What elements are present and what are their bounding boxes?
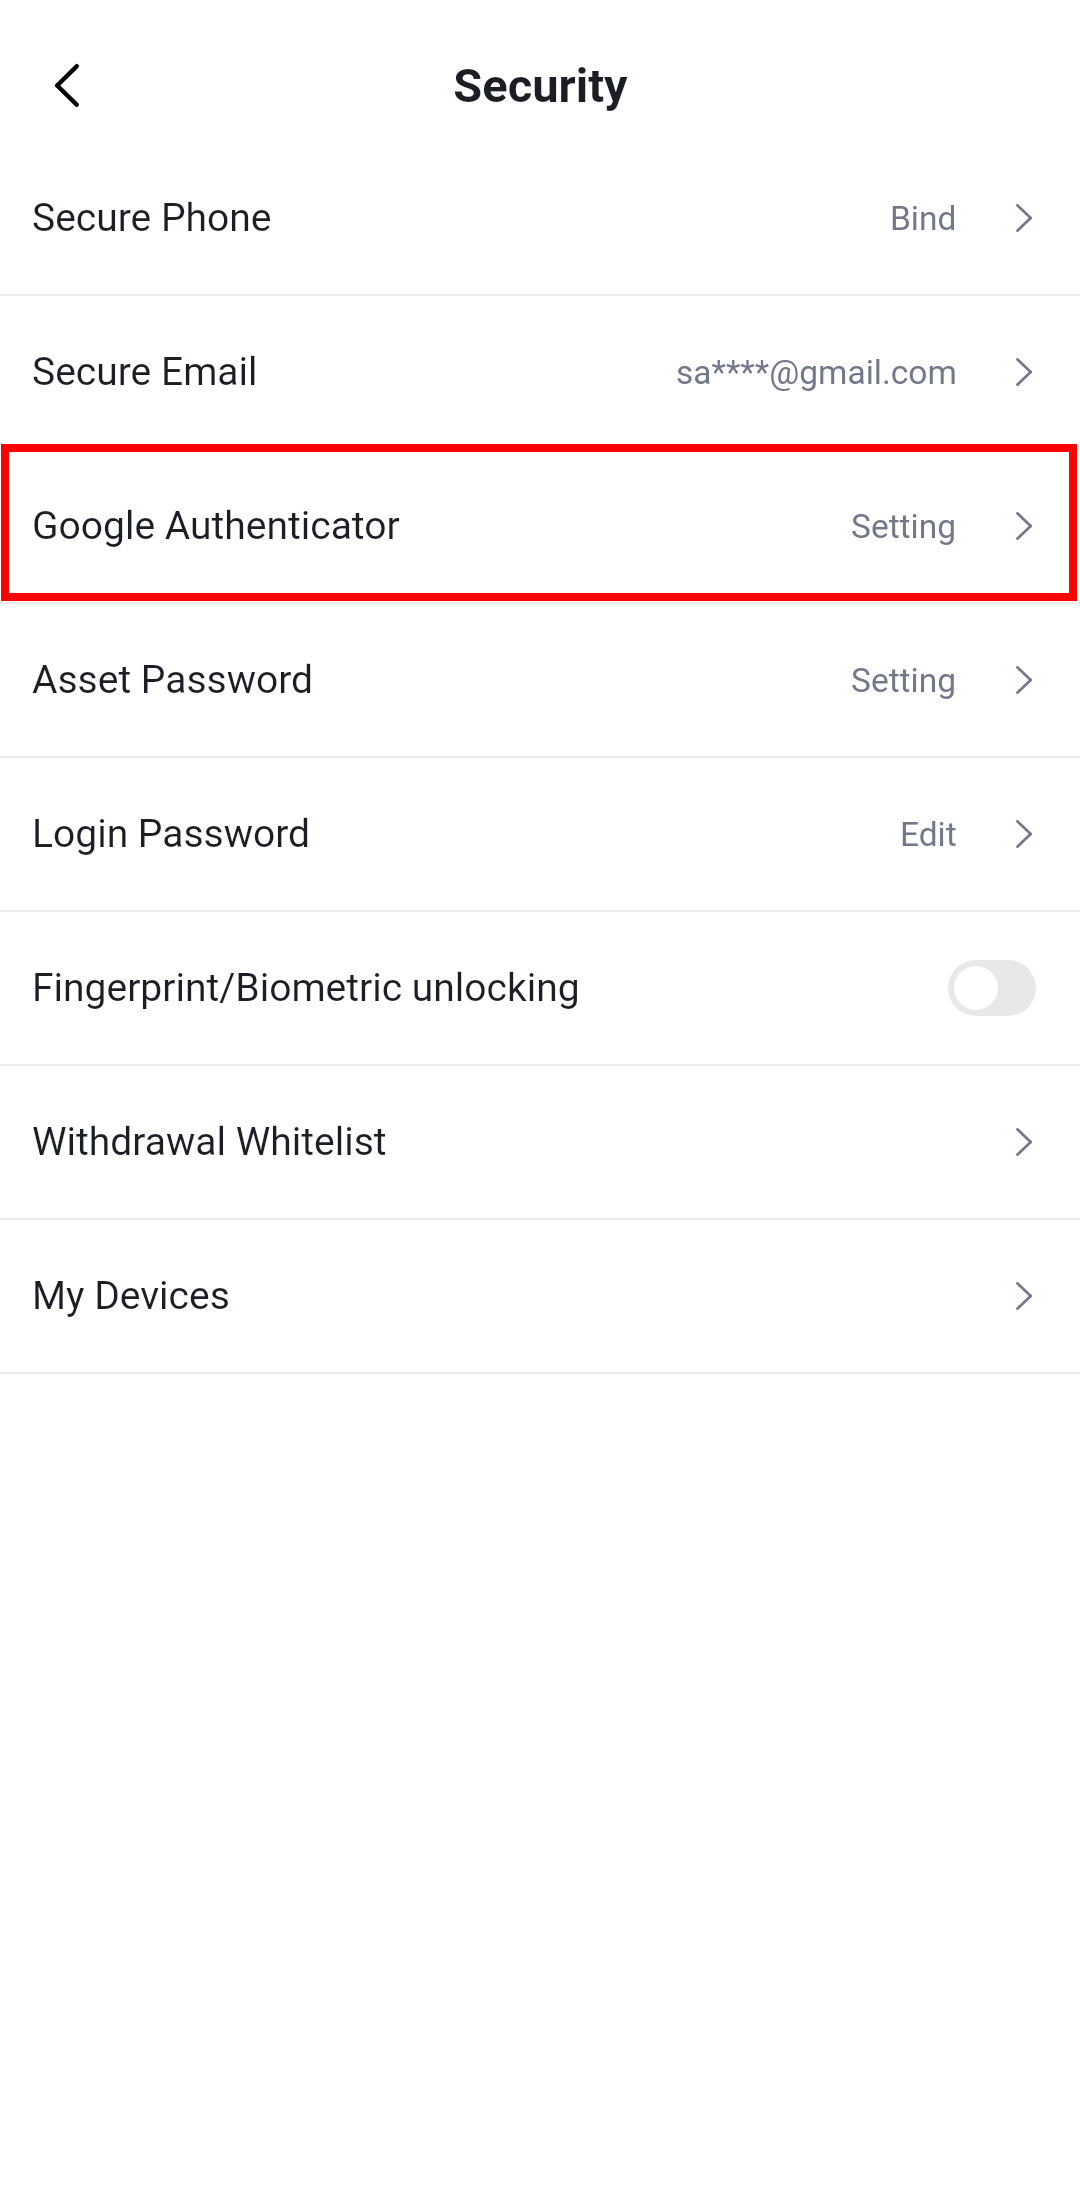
button[interactable]: Fingerprint/Biometric unlocking xyxy=(0,912,1080,1064)
button[interactable]: Toggle fingerprint unlocking xyxy=(948,960,1036,1016)
staticText: Secure Email xyxy=(32,349,258,395)
staticText: Bind xyxy=(890,199,957,238)
button[interactable]: Back xyxy=(31,49,103,121)
button[interactable]: Withdrawal Whitelist xyxy=(0,1066,1080,1218)
staticText: My Devices xyxy=(32,1273,230,1319)
staticText: Setting xyxy=(851,507,957,546)
staticText: Edit xyxy=(900,815,957,854)
button[interactable]: Secure Email xyxy=(0,296,1080,448)
staticText: Login Password xyxy=(32,811,311,857)
staticText: Withdrawal Whitelist xyxy=(32,1119,387,1165)
button[interactable]: Secure Phone xyxy=(0,142,1080,294)
staticText: Fingerprint/Biometric unlocking xyxy=(32,965,580,1011)
staticText: sa****@gmail.com xyxy=(676,353,957,392)
button[interactable]: Login Password xyxy=(0,758,1080,910)
staticText: Setting xyxy=(851,661,957,700)
staticText: Asset Password xyxy=(32,657,314,703)
button[interactable]: Asset Password xyxy=(0,604,1080,756)
staticText: Secure Phone xyxy=(32,195,272,241)
staticText: Security xyxy=(453,58,628,113)
staticText: Google Authenticator xyxy=(32,503,400,549)
button[interactable]: Google Authenticator xyxy=(0,450,1080,602)
button[interactable]: My Devices xyxy=(0,1220,1080,1372)
